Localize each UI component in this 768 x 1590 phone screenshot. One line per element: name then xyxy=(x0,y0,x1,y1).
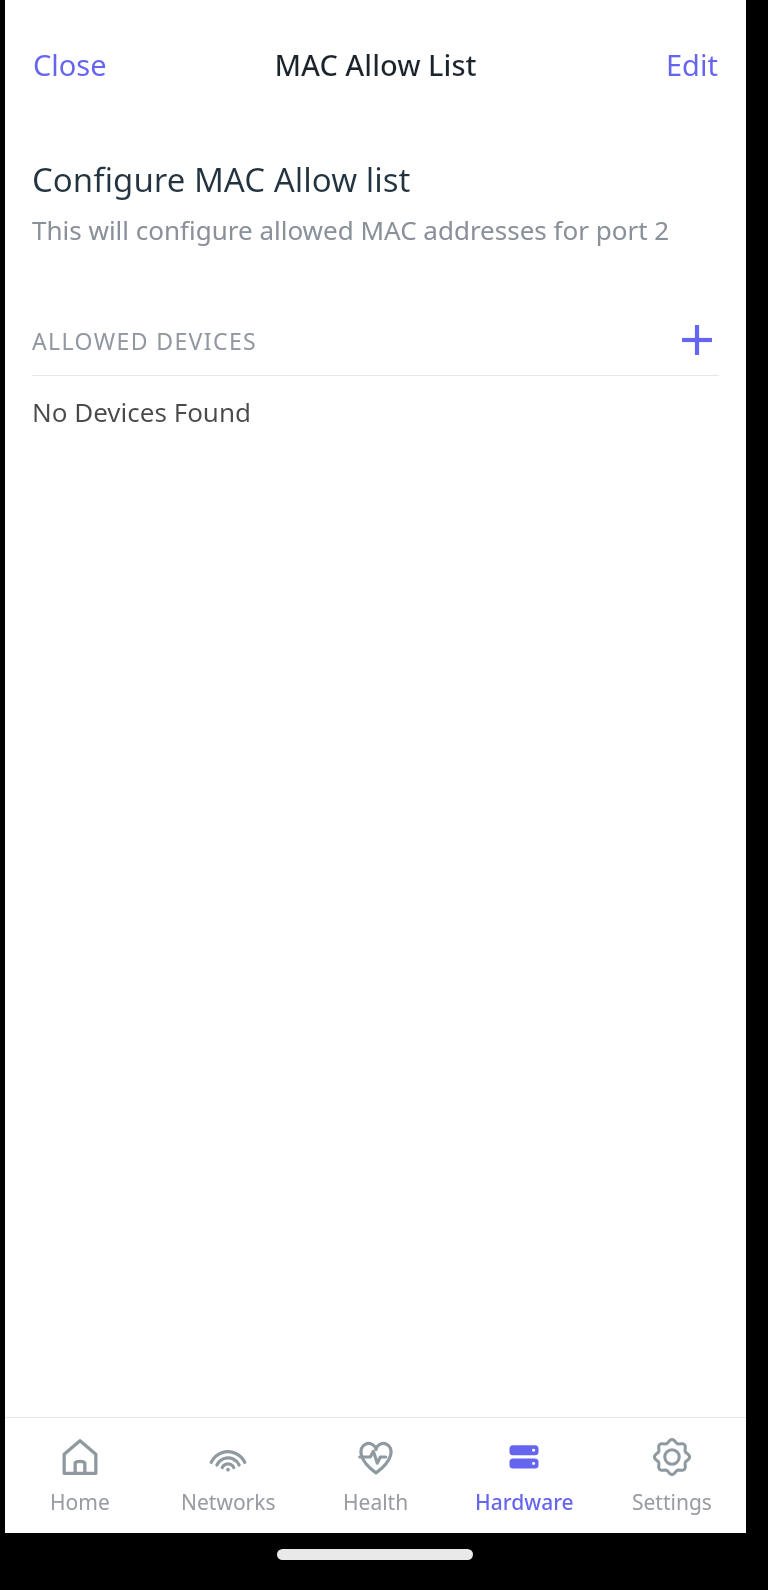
button[interactable]: Edit xyxy=(650,37,734,92)
staticText: Networks xyxy=(181,1488,276,1517)
button[interactable]: Close xyxy=(17,37,123,92)
button[interactable]: Networks xyxy=(154,1418,302,1533)
button[interactable]: Settings xyxy=(598,1418,746,1533)
staticText: ALLOWED DEVICES xyxy=(32,325,258,356)
staticText: Close xyxy=(33,45,107,84)
button[interactable]: Add device xyxy=(670,313,724,367)
staticText: Edit xyxy=(666,45,718,84)
staticText: Health xyxy=(343,1488,409,1517)
staticText: Settings xyxy=(632,1488,712,1517)
button[interactable]: Hardware xyxy=(450,1418,598,1533)
staticText: Configure MAC Allow list xyxy=(32,157,411,202)
button[interactable]: Health xyxy=(302,1418,450,1533)
staticText: Hardware xyxy=(475,1488,574,1517)
staticText: Home xyxy=(50,1488,110,1517)
button[interactable]: Home xyxy=(5,1418,154,1533)
staticText: This will configure allowed MAC addresse… xyxy=(32,212,670,247)
staticText: MAC Allow List xyxy=(274,45,477,84)
staticText: No Devices Found xyxy=(32,394,251,429)
